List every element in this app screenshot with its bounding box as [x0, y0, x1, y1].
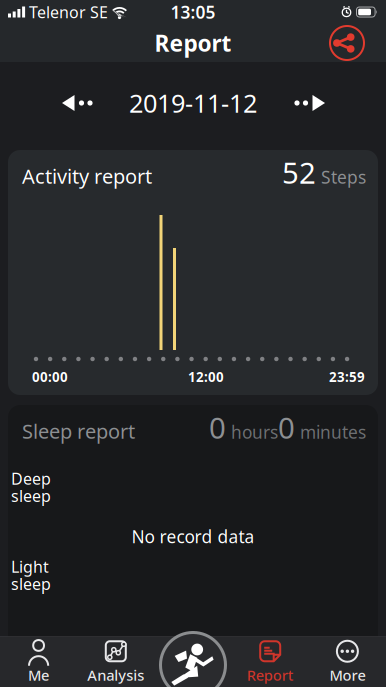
- staticText: 00:00: [32, 368, 68, 386]
- button[interactable]: Share: [329, 25, 364, 60]
- staticText: Activity report: [22, 163, 152, 189]
- staticText: hours: [226, 421, 278, 444]
- staticText: Analysis: [87, 665, 144, 685]
- staticText: 52: [282, 153, 316, 192]
- button[interactable]: More: [309, 636, 386, 687]
- staticText: 0: [209, 408, 226, 447]
- staticText: Telenor SE: [29, 1, 108, 23]
- staticText: Report: [247, 665, 294, 685]
- staticText: Deep: [11, 468, 51, 489]
- staticText: 12:00: [188, 368, 224, 386]
- staticText: Sleep report: [22, 418, 135, 444]
- staticText: minutes: [295, 421, 366, 444]
- button[interactable]: Me: [0, 636, 77, 687]
- staticText: No record data: [131, 525, 254, 548]
- staticText: 23:59: [329, 368, 365, 386]
- staticText: sleep: [11, 573, 51, 594]
- staticText: Me: [28, 665, 49, 685]
- staticText: Report: [154, 28, 231, 58]
- staticText: 2019-11-12: [129, 86, 257, 120]
- staticText: Light: [11, 556, 49, 577]
- button[interactable]: Start activity: [159, 631, 227, 687]
- staticText: sleep: [11, 485, 51, 506]
- staticText: Steps: [316, 166, 366, 189]
- button[interactable]: Analysis: [77, 636, 154, 687]
- button[interactable]: Report: [232, 636, 309, 687]
- staticText: 0: [278, 408, 295, 447]
- staticText: More: [329, 665, 365, 685]
- button[interactable]: Previous day: [62, 85, 93, 121]
- button[interactable]: Next day: [294, 85, 325, 121]
- staticText: 13:05: [170, 0, 215, 23]
